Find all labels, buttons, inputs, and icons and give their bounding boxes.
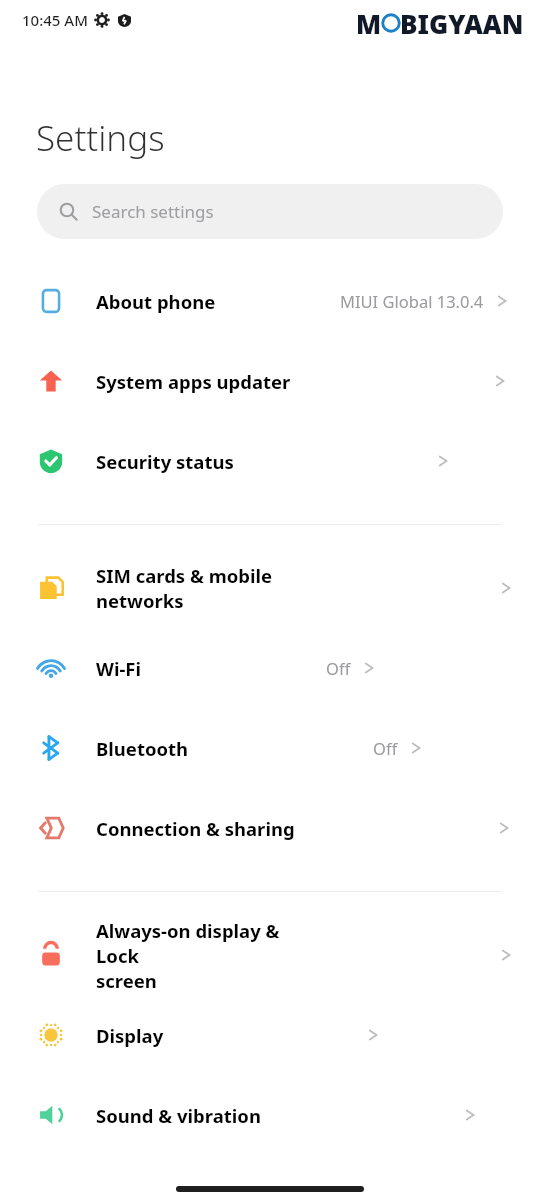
staticText: BIGYAAN: [400, 6, 524, 40]
staticText: 10:45 AM: [22, 10, 88, 30]
staticText: About phone: [96, 289, 216, 314]
button[interactable]: Search settings: [37, 184, 503, 239]
staticText: Sound & vibration: [96, 1103, 261, 1128]
staticText: Display: [96, 1023, 164, 1048]
button[interactable]: Connection & sharing: [0, 788, 540, 868]
staticText: MIUI Global 13.0.4: [340, 290, 484, 312]
button[interactable]: Bluetooth: [0, 708, 540, 788]
staticText: Always-on display & Lock screen: [96, 918, 297, 993]
button[interactable]: SIM cards & mobile networks: [0, 548, 540, 628]
staticText: Wi-Fi: [96, 656, 142, 681]
button[interactable]: About phone: [0, 261, 540, 341]
button[interactable]: Display: [0, 995, 540, 1075]
button[interactable]: Security status: [0, 421, 540, 501]
button[interactable]: Always-on display & Lock screen: [0, 915, 540, 995]
staticText: Bluetooth: [96, 736, 189, 761]
button[interactable]: System apps updater: [0, 341, 540, 421]
staticText: Connection & sharing: [96, 816, 295, 841]
button[interactable]: Sound & vibration: [0, 1075, 540, 1155]
staticText: Off: [373, 737, 398, 759]
staticText: M: [356, 6, 382, 40]
staticText: Search settings: [92, 200, 214, 223]
staticText: Off: [326, 657, 351, 679]
staticText: Security status: [96, 449, 234, 474]
staticText: System apps updater: [96, 369, 291, 394]
button[interactable]: Wi-Fi: [0, 628, 540, 708]
staticText: Settings: [36, 114, 165, 162]
staticText: SIM cards & mobile networks: [96, 563, 297, 613]
